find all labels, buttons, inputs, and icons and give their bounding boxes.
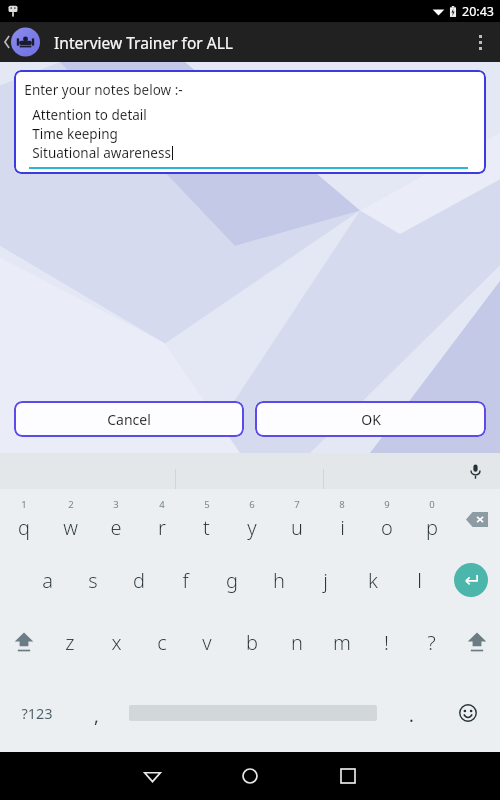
button[interactable]: Enter — [443, 549, 499, 611]
staticText: d — [133, 567, 145, 594]
staticText: z — [65, 629, 75, 656]
button[interactable]: ! — [364, 611, 409, 673]
button[interactable]: Home — [222, 752, 278, 800]
staticText: 2 — [68, 498, 74, 511]
button[interactable]: 0 — [409, 489, 454, 549]
staticText: ? — [427, 629, 436, 656]
staticText: 3 — [113, 498, 119, 511]
button[interactable]: 4 — [139, 489, 184, 549]
button[interactable]: a — [24, 549, 70, 611]
staticText: Attention to detail — [32, 106, 147, 124]
button[interactable]: 5 — [184, 489, 229, 549]
button[interactable]: 6 — [229, 489, 274, 549]
staticText: s — [88, 567, 98, 594]
button[interactable]: 9 — [364, 489, 409, 549]
button[interactable]: Back — [124, 752, 180, 800]
staticText: a — [42, 567, 53, 594]
staticText: b — [246, 629, 258, 656]
button[interactable]: Shift — [1, 611, 47, 673]
staticText: p — [426, 514, 438, 541]
button[interactable]: c — [139, 611, 184, 673]
button[interactable]: 2 — [47, 489, 93, 549]
staticText: v — [202, 629, 212, 656]
button[interactable]: m — [319, 611, 364, 673]
staticText: Interview Trainer for ALL — [54, 32, 233, 53]
button[interactable]: Cancel — [14, 401, 244, 437]
button[interactable]: z — [47, 611, 93, 673]
staticText: OK — [361, 410, 381, 429]
staticText: g — [226, 567, 238, 594]
staticText: c — [157, 629, 167, 656]
button[interactable]: , — [73, 673, 119, 752]
staticText: ?123 — [21, 703, 53, 723]
staticText: l — [417, 567, 422, 594]
button[interactable]: Voice input — [462, 458, 488, 484]
staticText: h — [273, 567, 285, 594]
button[interactable]: Backspace — [454, 489, 499, 549]
staticText: i — [340, 514, 345, 541]
staticText: Time keeping — [32, 125, 118, 143]
staticText: 20:43 — [462, 3, 494, 20]
button[interactable]: Space — [119, 673, 386, 752]
button[interactable]: ? — [409, 611, 454, 673]
staticText: Situational awareness — [32, 144, 171, 162]
button[interactable]: d — [116, 549, 162, 611]
button[interactable]: h — [255, 549, 302, 611]
button[interactable]: ?123 — [1, 673, 73, 752]
staticText: Enter your notes below :- — [24, 81, 183, 99]
button[interactable]: b — [229, 611, 274, 673]
staticText: . — [409, 703, 414, 728]
button[interactable]: Recent apps — [320, 752, 376, 800]
staticText: 1 — [21, 498, 27, 511]
staticText: u — [291, 514, 303, 541]
staticText: m — [333, 629, 351, 656]
button[interactable]: k — [349, 549, 396, 611]
staticText: t — [203, 514, 210, 541]
staticText: r — [158, 514, 166, 541]
staticText: e — [110, 514, 122, 541]
button[interactable]: Up — [4, 24, 40, 60]
staticText: q — [18, 514, 30, 541]
button[interactable]: 7 — [274, 489, 319, 549]
button[interactable]: v — [184, 611, 229, 673]
staticText: 0 — [429, 498, 435, 511]
staticText: 7 — [294, 498, 300, 511]
button[interactable]: Attention to detail — [32, 106, 173, 162]
staticText: y — [247, 514, 257, 541]
staticText: n — [291, 629, 303, 656]
staticText: w — [63, 514, 78, 541]
staticText: f — [182, 567, 189, 594]
button[interactable]: . — [386, 673, 437, 752]
button[interactable]: 1 — [1, 489, 47, 549]
staticText: 5 — [204, 498, 210, 511]
staticText: j — [323, 567, 328, 594]
staticText: 4 — [159, 498, 165, 511]
button[interactable]: Emoji — [437, 673, 499, 752]
staticText: k — [368, 567, 378, 594]
button[interactable]: l — [396, 549, 443, 611]
staticText: 8 — [339, 498, 345, 511]
button[interactable]: Shift — [454, 611, 499, 673]
button[interactable]: n — [274, 611, 319, 673]
staticText: 6 — [249, 498, 255, 511]
button[interactable]: s — [70, 549, 116, 611]
staticText: o — [381, 514, 393, 541]
staticText: 9 — [384, 498, 390, 511]
button[interactable]: g — [208, 549, 255, 611]
button[interactable]: f — [162, 549, 208, 611]
button[interactable]: 8 — [319, 489, 364, 549]
staticText: , — [94, 704, 99, 729]
button[interactable]: OK — [255, 401, 486, 437]
button[interactable]: 3 — [93, 489, 139, 549]
button[interactable]: More options — [460, 22, 500, 62]
button[interactable]: j — [302, 549, 349, 611]
staticText: x — [111, 629, 122, 656]
staticText: Cancel — [107, 410, 151, 429]
staticText: ! — [384, 629, 389, 656]
button[interactable]: x — [93, 611, 139, 673]
